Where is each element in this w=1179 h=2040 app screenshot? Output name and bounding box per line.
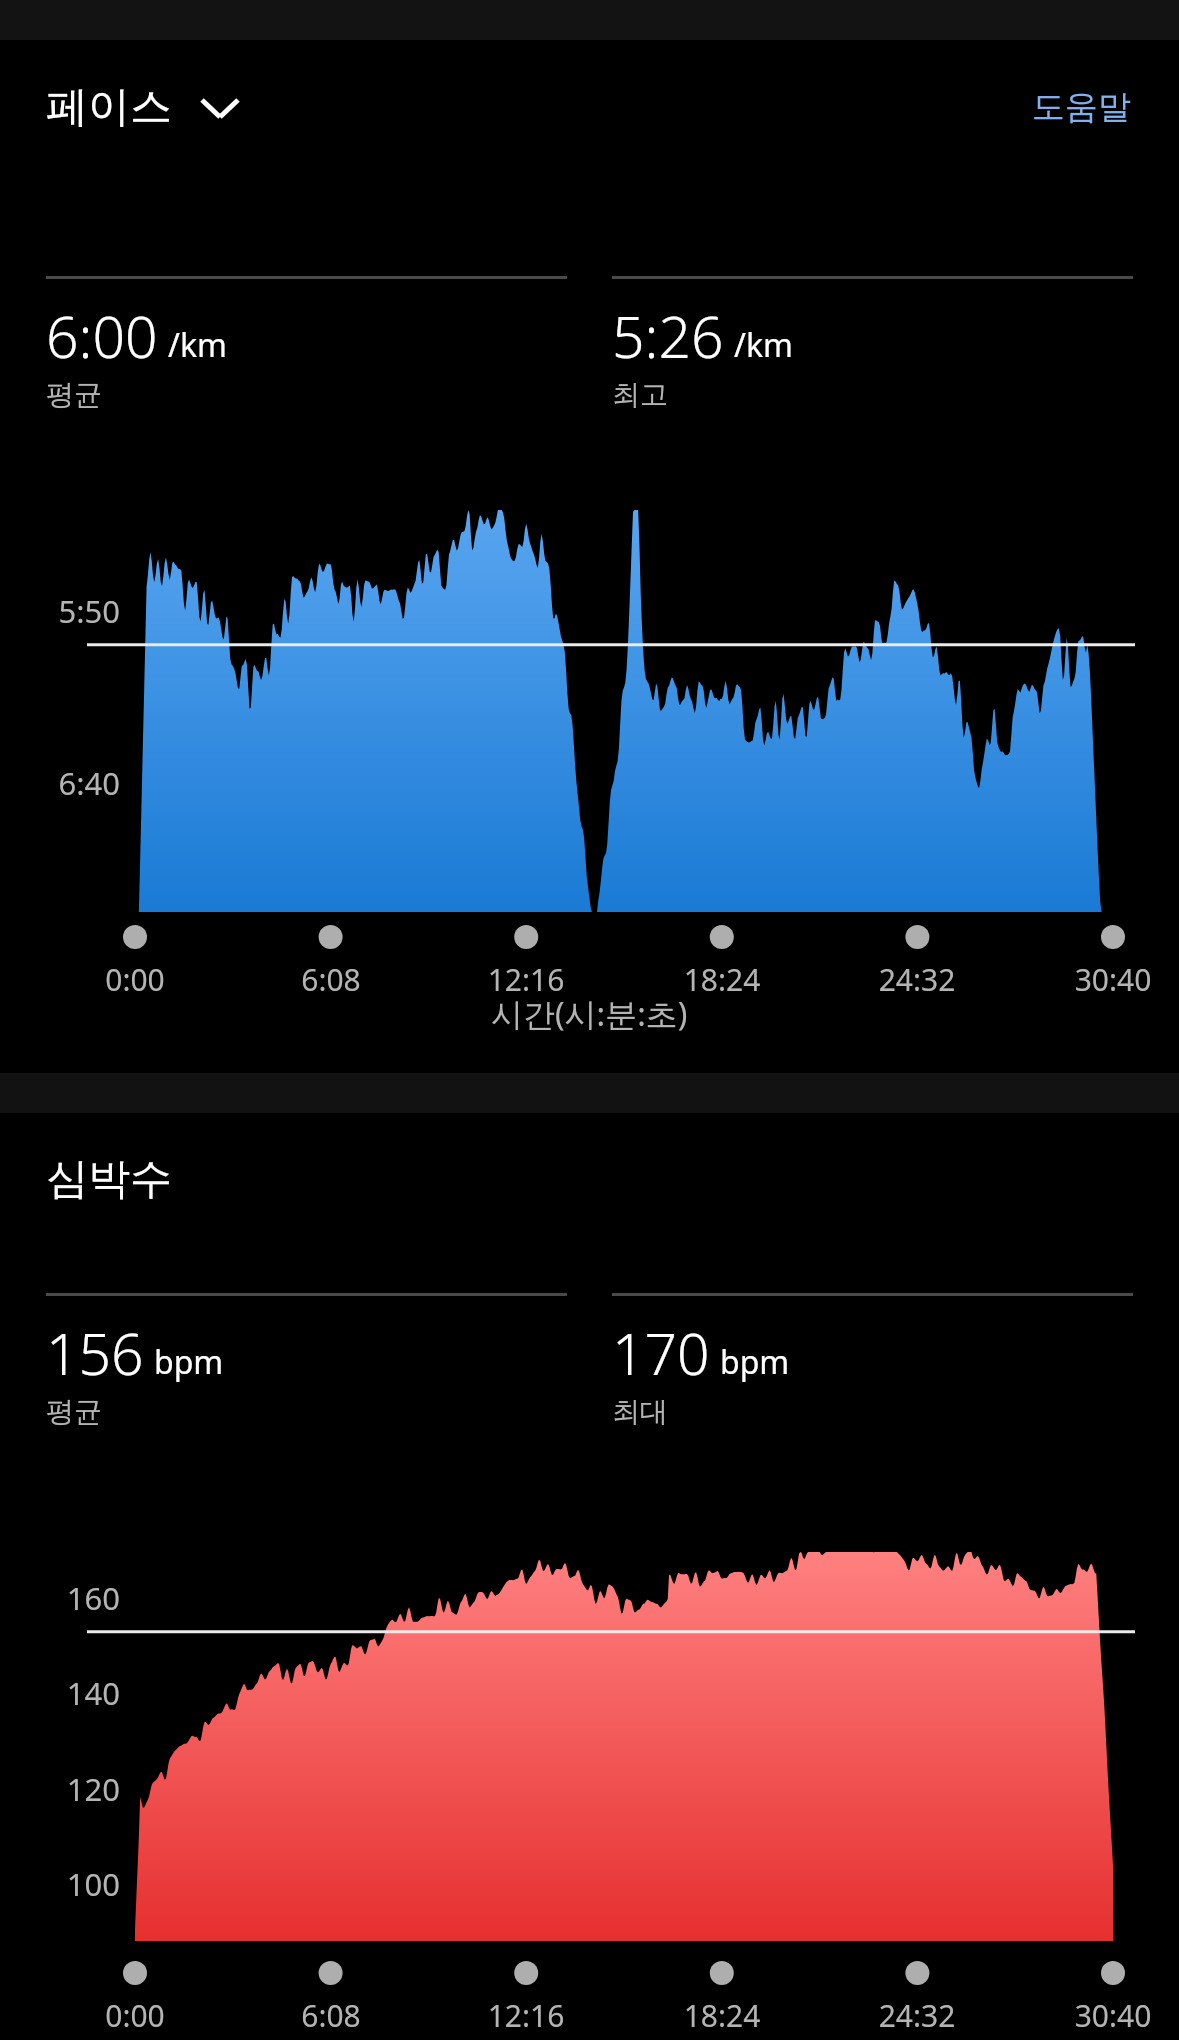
staticText: 160	[0, 1577, 120, 1619]
staticText: 156	[46, 1314, 144, 1392]
staticText: 도움말	[1032, 86, 1131, 128]
staticText: 30:40	[1018, 1995, 1179, 2036]
staticText: 시간(시:분:초)	[491, 992, 688, 1036]
staticText: 5:50	[0, 590, 120, 632]
staticText: 평균	[46, 377, 102, 412]
staticText: 6:08	[236, 959, 426, 1000]
staticText: 6:00	[46, 297, 158, 375]
staticText: 100	[0, 1863, 120, 1905]
staticText: 24:32	[822, 1995, 1012, 2036]
staticText: 5:26	[612, 297, 724, 375]
staticText: 140	[0, 1672, 120, 1714]
button[interactable]: 페이스	[46, 81, 254, 134]
staticText: 12:16	[431, 1995, 621, 2036]
staticText: 18:24	[627, 959, 817, 1000]
staticText: 0:00	[40, 959, 230, 1000]
staticText: 심박수	[46, 1153, 172, 1206]
other: Change metric	[196, 84, 244, 132]
staticText: 12:16	[431, 959, 621, 1000]
staticText: bpm	[154, 1340, 224, 1384]
staticText: bpm	[720, 1340, 790, 1384]
staticText: 최대	[612, 1394, 668, 1429]
staticText: 24:32	[822, 959, 1012, 1000]
staticText: 18:24	[627, 1995, 817, 2036]
staticText: 6:08	[236, 1995, 426, 2036]
staticText: 120	[0, 1768, 120, 1810]
staticText: /km	[168, 323, 227, 367]
staticText: 30:40	[1018, 959, 1179, 1000]
staticText: 6:40	[0, 762, 120, 804]
button[interactable]: 도움말	[1018, 76, 1145, 138]
staticText: /km	[734, 323, 793, 367]
staticText: 페이스	[46, 81, 172, 134]
staticText: 평균	[46, 1394, 102, 1429]
staticText: 170	[612, 1314, 710, 1392]
staticText: 최고	[612, 377, 668, 412]
staticText: 0:00	[40, 1995, 230, 2036]
